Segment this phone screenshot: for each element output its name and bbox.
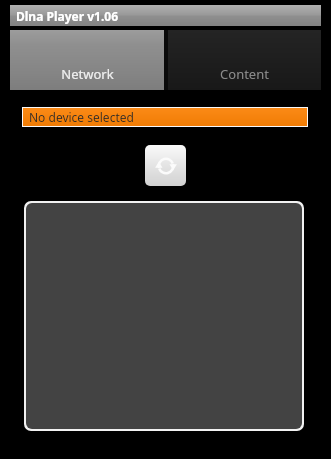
button[interactable]: Network <box>10 30 164 90</box>
button[interactable] <box>26 203 302 429</box>
staticText: Dlna Player v1.06 <box>16 8 119 24</box>
staticText: Network <box>61 65 114 83</box>
staticText: No device selected <box>29 109 134 125</box>
button[interactable]: Refresh <box>145 145 186 186</box>
button[interactable]: No device selected <box>23 108 307 126</box>
staticText: Content <box>220 65 269 83</box>
button[interactable]: Content <box>168 30 321 90</box>
